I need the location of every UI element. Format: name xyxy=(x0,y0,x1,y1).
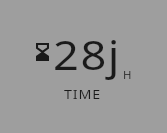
staticText: TIME xyxy=(64,85,101,103)
staticText: H xyxy=(123,68,132,82)
other: Timer xyxy=(36,43,49,61)
staticText: 28j xyxy=(53,27,122,81)
